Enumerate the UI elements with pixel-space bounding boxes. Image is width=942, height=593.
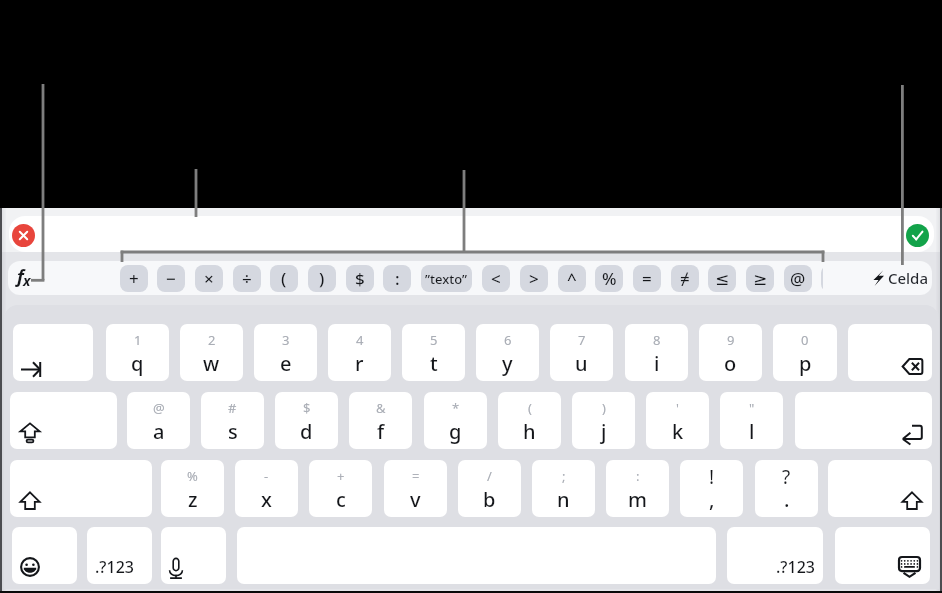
staticText: w — [203, 350, 220, 377]
staticText: & — [376, 399, 386, 417]
button[interactable]: .?123 — [727, 527, 823, 584]
button[interactable]: ( — [498, 392, 561, 449]
button[interactable]: ! — [680, 460, 743, 517]
button[interactable]: Aceptar — [906, 224, 929, 247]
button[interactable]: Mayusculas — [828, 460, 932, 517]
staticText: 5 — [430, 331, 438, 349]
staticText: x — [23, 271, 31, 290]
button[interactable]: ) — [308, 265, 336, 292]
button[interactable]: Retroceso — [848, 324, 932, 381]
button[interactable]: : — [606, 460, 669, 517]
button[interactable]: ≤ — [708, 265, 736, 292]
button[interactable]: Emoji — [12, 527, 77, 584]
button[interactable]: 5 — [402, 324, 465, 381]
button[interactable]: # — [201, 392, 264, 449]
staticText: + — [337, 467, 345, 485]
staticText: ( — [528, 399, 532, 417]
button[interactable]: > — [520, 265, 548, 292]
button[interactable]: Bloqueo de mayusculas — [10, 392, 117, 449]
button[interactable]: $ — [346, 265, 374, 292]
button[interactable]: $ — [275, 392, 338, 449]
staticText: 3 — [282, 331, 290, 349]
button[interactable]: Intro — [795, 392, 932, 449]
button[interactable]: # — [821, 265, 823, 292]
button[interactable]: Ocultar teclado — [835, 527, 930, 584]
button[interactable]: ^ — [558, 265, 586, 292]
button[interactable]: × — [195, 265, 223, 292]
button[interactable]: " — [720, 392, 783, 449]
button[interactable]: ÷ — [233, 265, 261, 292]
staticText: e — [280, 350, 292, 377]
button[interactable]: Funciones — [8, 261, 48, 295]
staticText: $ — [355, 267, 365, 290]
staticText: m — [628, 486, 647, 513]
button[interactable]: 2 — [180, 324, 243, 381]
button[interactable]: Dictado — [161, 527, 226, 584]
staticText: . — [784, 486, 790, 513]
button[interactable]: * — [424, 392, 487, 449]
staticText: q — [131, 350, 144, 377]
button[interactable]: ' — [646, 392, 709, 449]
button[interactable]: ( — [270, 265, 298, 292]
staticText: o — [724, 350, 737, 377]
staticText: ^ — [567, 267, 577, 290]
staticText: j — [601, 418, 607, 445]
button[interactable]: 6 — [476, 324, 539, 381]
button[interactable]: % — [595, 265, 623, 292]
staticText: $ — [303, 399, 311, 417]
button[interactable]: 7 — [550, 324, 613, 381]
staticText: r — [355, 350, 364, 377]
button[interactable]: + — [309, 460, 372, 517]
staticText: ) — [319, 267, 325, 290]
staticText: ) — [602, 399, 606, 417]
button[interactable]: < — [482, 265, 510, 292]
button[interactable]: 0 — [773, 324, 837, 381]
staticText: c — [336, 486, 346, 513]
button[interactable]: = — [384, 460, 447, 517]
staticText: , — [709, 486, 715, 513]
button[interactable]: 8 — [625, 324, 688, 381]
button[interactable]: % — [161, 460, 224, 517]
staticText: d — [300, 418, 313, 445]
staticText: ≥ — [753, 269, 768, 289]
button[interactable]: − — [157, 265, 185, 292]
button[interactable]: ”texto” — [421, 265, 472, 292]
button[interactable]: @ — [127, 392, 190, 449]
button[interactable]: 9 — [699, 324, 762, 381]
staticText: × — [204, 267, 214, 290]
button[interactable]: - — [235, 460, 298, 517]
button[interactable]: Mayusculas — [10, 460, 152, 517]
button[interactable]: & — [349, 392, 412, 449]
button[interactable]: / — [458, 460, 521, 517]
button[interactable]: 4 — [328, 324, 391, 381]
button[interactable]: 1 — [106, 324, 169, 381]
staticText: : — [636, 467, 640, 485]
button[interactable]: ≥ — [746, 265, 774, 292]
button[interactable]: + — [120, 265, 148, 292]
staticText: > — [529, 267, 539, 290]
staticText: " — [749, 399, 755, 417]
button[interactable]: Celda — [873, 261, 932, 295]
button[interactable]: : — [383, 265, 411, 292]
staticText: l — [749, 418, 755, 445]
button[interactable]: .?123 — [87, 527, 152, 584]
button[interactable]: ) — [572, 392, 635, 449]
staticText: = — [642, 267, 652, 290]
button[interactable]: @ — [784, 265, 812, 292]
button[interactable]: ? — [755, 460, 818, 517]
staticText: s — [228, 418, 238, 445]
button[interactable]: Cancelar — [12, 224, 35, 247]
staticText: 4 — [356, 331, 364, 349]
staticText: f — [17, 264, 24, 289]
staticText: x — [261, 486, 272, 513]
staticText: ( — [281, 267, 287, 290]
button[interactable]: ; — [532, 460, 595, 517]
button[interactable]: 3 — [254, 324, 317, 381]
button[interactable]: = — [633, 265, 661, 292]
staticText: + — [129, 267, 139, 290]
staticText: .?123 — [95, 556, 134, 578]
button[interactable]: Tabulador — [13, 324, 93, 381]
button[interactable]: ≠ — [671, 265, 699, 292]
staticText: # — [228, 399, 237, 417]
